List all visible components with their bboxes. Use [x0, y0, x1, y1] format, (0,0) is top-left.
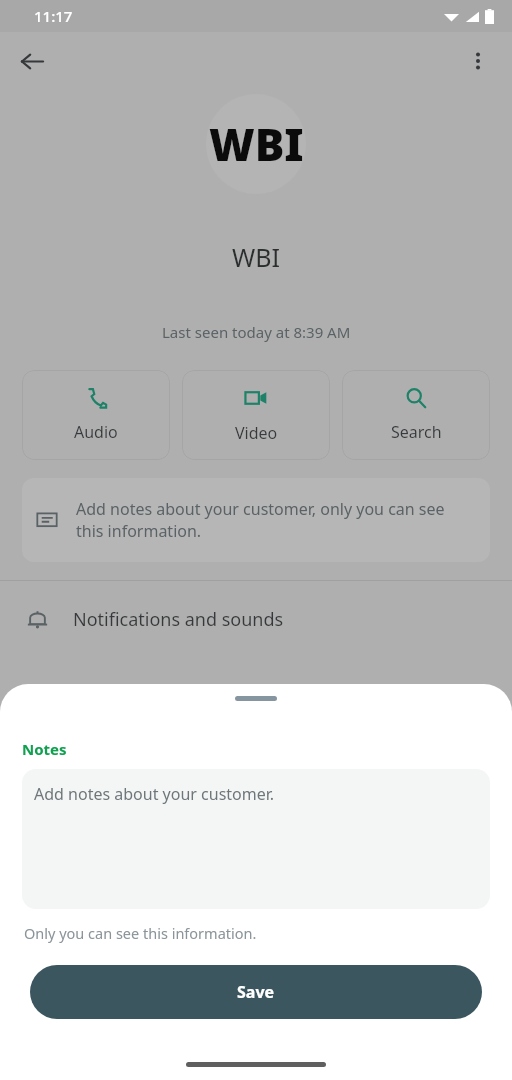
staticText: Audio: [74, 421, 118, 443]
staticText: Add notes about your customer.: [34, 783, 275, 805]
button[interactable]: Search: [342, 370, 490, 460]
button[interactable]: Media visibility: [0, 657, 512, 733]
staticText: Save: [237, 981, 275, 1003]
staticText: WBI: [232, 240, 280, 274]
staticText: 11:17: [34, 6, 73, 26]
staticText: Last seen today at 8:39 AM: [162, 322, 351, 342]
button[interactable]: Notifications and sounds: [0, 581, 512, 657]
button[interactable]: Save: [30, 965, 482, 1019]
staticText: Add notes about your customer, only you …: [76, 498, 476, 542]
button[interactable]: More options: [456, 39, 500, 83]
staticText: Media visibility: [73, 683, 198, 708]
staticText: WBI: [209, 114, 304, 174]
staticText: Notes: [22, 739, 67, 759]
button[interactable]: Add notes about your customer.: [22, 769, 490, 909]
button[interactable]: Audio: [22, 370, 170, 460]
button[interactable]: Video: [182, 370, 330, 460]
button[interactable]: Add notes about your customer, only you …: [22, 478, 490, 562]
staticText: Search: [391, 421, 442, 443]
staticText: Only you can see this information.: [24, 923, 257, 943]
staticText: Notifications and sounds: [73, 607, 284, 632]
button[interactable]: Back: [10, 39, 54, 83]
staticText: Video: [235, 422, 278, 444]
